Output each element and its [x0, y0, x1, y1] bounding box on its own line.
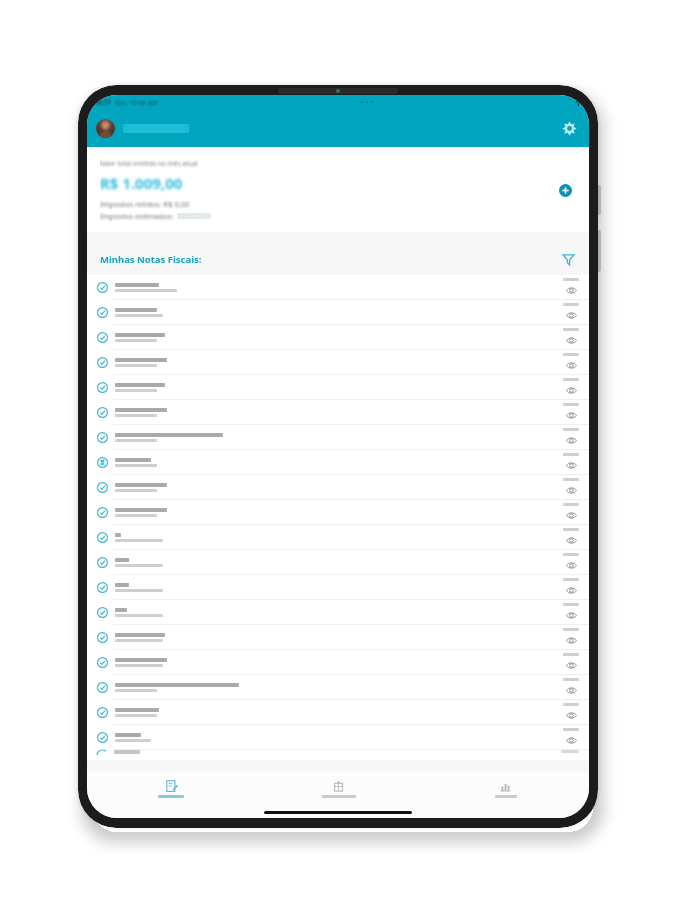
button[interactable]: Visualizar nota	[87, 650, 589, 675]
button[interactable]: Visualizar nota	[87, 525, 589, 550]
button[interactable]: Visualizar nota	[87, 475, 589, 500]
button[interactable]: Visualizar nota	[565, 609, 578, 622]
button[interactable]: Visualizar nota	[565, 709, 578, 722]
staticText: Minhas Notas Fiscais:	[100, 253, 202, 266]
button[interactable]: Visualizar nota	[87, 450, 589, 475]
button[interactable]: Visualizar nota	[87, 375, 589, 400]
button[interactable]: Visualizar nota	[87, 725, 589, 750]
button[interactable]: Visualizar nota	[87, 275, 589, 300]
button[interactable]: Visualizar nota	[565, 509, 578, 522]
button[interactable]: Notas Fiscais	[87, 772, 255, 806]
button[interactable]: Visualizar nota	[565, 584, 578, 597]
button[interactable]: Perfil	[96, 119, 115, 138]
button[interactable]: Visualizar nota	[565, 309, 578, 322]
button[interactable]: Visualizar nota	[565, 684, 578, 697]
staticText: Impostos estimados:	[100, 211, 174, 221]
button[interactable]: Visualizar nota	[87, 675, 589, 700]
button[interactable]: Visualizar nota	[565, 559, 578, 572]
button[interactable]: Visualizar nota	[87, 425, 589, 450]
button[interactable]: Visualizar nota	[565, 634, 578, 647]
button[interactable]: Visualizar nota	[87, 550, 589, 575]
button[interactable]: Configurações	[255, 772, 422, 806]
button[interactable]: Filtrar	[559, 250, 577, 268]
button[interactable]: Relatórios	[422, 772, 589, 806]
button[interactable]: Visualizar nota	[565, 359, 578, 372]
button[interactable]: Visualizar nota	[87, 325, 589, 350]
button[interactable]: Visualizar nota	[565, 434, 578, 447]
button[interactable]	[87, 750, 589, 760]
button[interactable]: Visualizar nota	[565, 409, 578, 422]
button[interactable]: Adicionar nota fiscal	[553, 178, 577, 202]
button[interactable]: Visualizar nota	[565, 459, 578, 472]
staticText: Valor total emitido no mês atual	[100, 159, 198, 168]
button[interactable]: Visualizar nota	[565, 334, 578, 347]
button[interactable]: Visualizar nota	[565, 659, 578, 672]
button[interactable]: Visualizar nota	[565, 484, 578, 497]
button[interactable]: Visualizar nota	[87, 500, 589, 525]
button[interactable]: Configurações	[558, 117, 580, 139]
button[interactable]: Visualizar nota	[87, 625, 589, 650]
button[interactable]: Visualizar nota	[565, 284, 578, 297]
button[interactable]: Visualizar nota	[565, 734, 578, 747]
button[interactable]: Visualizar nota	[87, 400, 589, 425]
button[interactable]: Visualizar nota	[87, 700, 589, 725]
button[interactable]: Visualizar nota	[565, 534, 578, 547]
staticText: 16:37	[94, 98, 111, 107]
staticText: R$ 1.009,00	[100, 173, 183, 193]
button[interactable]: Visualizar nota	[87, 600, 589, 625]
button[interactable]: Visualizar nota	[565, 384, 578, 397]
button[interactable]: Visualizar nota	[87, 575, 589, 600]
button[interactable]: Visualizar nota	[87, 300, 589, 325]
button[interactable]: Visualizar nota	[87, 350, 589, 375]
staticText: Qui, 10 de abr.	[115, 98, 159, 107]
staticText: Impostos retidos: R$ 0,00	[100, 199, 190, 209]
